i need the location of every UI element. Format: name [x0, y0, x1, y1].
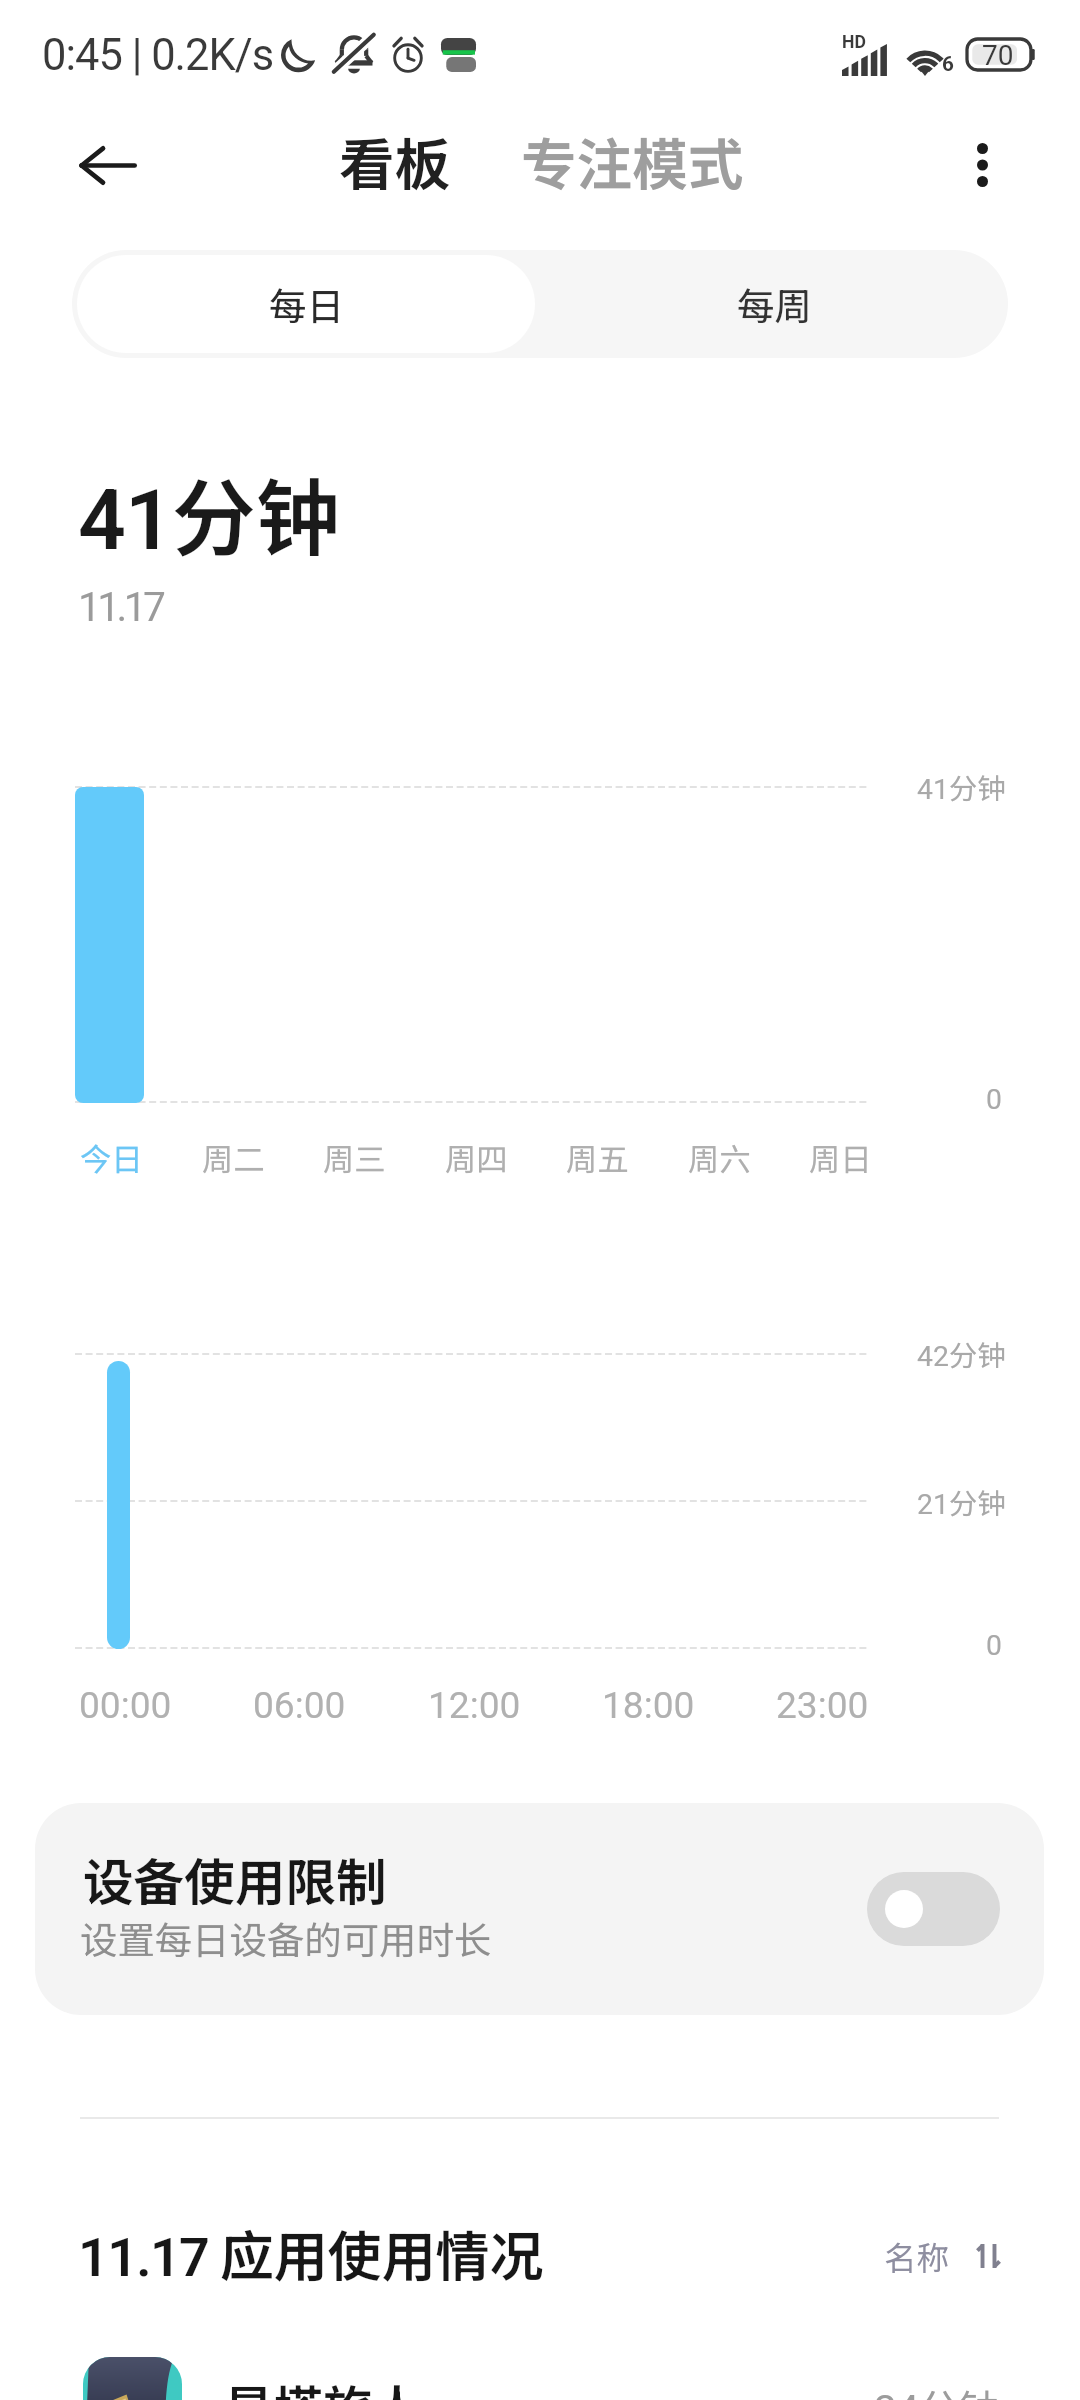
staticText: 41分钟 [78, 452, 340, 573]
staticText: 11.17 应用使用情况 [78, 2213, 544, 2291]
staticText: 11.17 [78, 583, 163, 631]
staticText: 0:45 | 0.2K/s [42, 30, 274, 80]
staticText: 06:00 [253, 1684, 346, 1728]
button[interactable]: 周三 [323, 1135, 386, 1180]
button[interactable]: More options [950, 128, 1014, 202]
staticText: 00:00 [79, 1684, 172, 1728]
staticText: 41分钟 [917, 766, 1006, 807]
staticText: 21分钟 [917, 1481, 1006, 1522]
staticText: 12:00 [428, 1684, 521, 1728]
staticText: 18:00 [602, 1684, 695, 1728]
staticText: 周五 [566, 1135, 629, 1180]
staticText: 42分钟 [917, 1333, 1006, 1374]
staticText: 周六 [688, 1135, 751, 1180]
staticText: 0 [986, 1083, 1002, 1116]
button[interactable]: 专注模式 [510, 118, 755, 204]
button[interactable]: 周日 [809, 1135, 872, 1180]
button[interactable]: 星塔旅人 [83, 2346, 1000, 2400]
button[interactable]: Device usage limit toggle [867, 1872, 1000, 1946]
button[interactable]: 名称 [880, 2228, 1004, 2283]
staticText: 每日 [269, 277, 344, 331]
staticText: 24分钟 [874, 2377, 1000, 2400]
staticText: 看板 [339, 121, 451, 201]
button[interactable]: 每日 [77, 255, 535, 353]
button[interactable]: 周五 [566, 1135, 629, 1180]
staticText: 今日 [80, 1135, 143, 1180]
button[interactable]: 看板 [328, 118, 462, 204]
staticText: 0 [986, 1629, 1002, 1662]
button[interactable]: 设备使用限制 [35, 1803, 1044, 2015]
button[interactable]: 每周 [540, 250, 1008, 358]
staticText: HD [842, 32, 866, 53]
staticText: 周三 [323, 1135, 386, 1180]
staticText: 周四 [445, 1135, 508, 1180]
staticText: 6 [942, 52, 954, 76]
staticText: 每周 [737, 277, 812, 331]
staticText: 设置每日设备的可用时长 [80, 1911, 492, 1965]
button[interactable]: Back [58, 143, 158, 187]
button[interactable]: 周四 [445, 1135, 508, 1180]
staticText: 周二 [202, 1135, 265, 1180]
button[interactable]: 周六 [688, 1135, 751, 1180]
staticText: 名称 [884, 2232, 949, 2279]
staticText: 70 [982, 39, 1014, 70]
staticText: 周日 [809, 1135, 872, 1180]
staticText: 设备使用限制 [83, 1842, 387, 1915]
button[interactable]: 今日 [80, 1135, 143, 1180]
staticText: 星塔旅人 [224, 2370, 422, 2400]
button[interactable]: 周二 [202, 1135, 265, 1180]
staticText: 23:00 [776, 1684, 869, 1728]
staticText: 专注模式 [521, 121, 744, 201]
